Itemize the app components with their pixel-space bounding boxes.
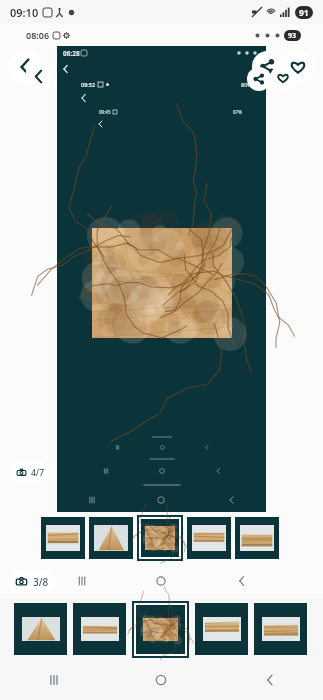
button[interactable]: 3/8 (15, 570, 49, 593)
button[interactable]: 4/7 (16, 463, 44, 482)
staticText: 08:06 (26, 29, 50, 41)
button[interactable]: Home (134, 463, 190, 479)
button[interactable]: Photo thumbnail (141, 519, 179, 557)
button[interactable]: Home (121, 564, 201, 598)
button[interactable]: Back (25, 63, 52, 90)
staticText: 80% (241, 81, 252, 88)
staticText: 93 (288, 31, 297, 41)
button[interactable]: Photo thumbnail (14, 603, 67, 655)
button[interactable]: Home (126, 490, 196, 510)
button[interactable]: Photo thumbnail (254, 603, 307, 655)
staticText: 08:28 (63, 49, 80, 58)
button[interactable]: Back (196, 490, 266, 510)
button[interactable]: Share (252, 51, 283, 82)
button[interactable]: Photo thumbnail (195, 603, 248, 655)
button[interactable]: Recent apps (95, 441, 140, 454)
button[interactable]: Recent apps (0, 660, 107, 700)
button[interactable]: Favorite (270, 65, 296, 91)
button[interactable]: Recent apps (77, 463, 134, 479)
staticText: 09:45 (99, 109, 111, 115)
button[interactable]: Photo thumbnail (89, 517, 133, 559)
staticText: 3/8 (33, 575, 49, 589)
button[interactable]: Back (8, 50, 42, 84)
staticText: 67% (233, 109, 242, 115)
button[interactable]: Home (107, 660, 215, 700)
staticText: 09:52 (81, 81, 96, 88)
button[interactable]: Photo thumbnail (73, 603, 126, 655)
button[interactable]: Recent apps (42, 564, 121, 598)
button[interactable]: Share (247, 67, 271, 91)
button[interactable]: Back (184, 441, 228, 454)
button[interactable]: Recent apps (57, 490, 126, 510)
staticText: 4/7 (31, 467, 44, 479)
button[interactable]: Home (140, 441, 184, 454)
staticText: 09:10 (10, 5, 39, 20)
button[interactable]: Back (201, 564, 281, 598)
button[interactable]: Photo thumbnail (41, 517, 85, 559)
button[interactable]: Back (190, 463, 246, 479)
button[interactable]: Photo thumbnail (187, 517, 231, 559)
button[interactable]: Photo thumbnail (136, 605, 185, 654)
staticText: 91 (299, 7, 309, 19)
button[interactable]: Back (215, 660, 323, 700)
button[interactable]: Photo thumbnail (235, 517, 279, 559)
button[interactable]: Favorite (281, 50, 315, 84)
